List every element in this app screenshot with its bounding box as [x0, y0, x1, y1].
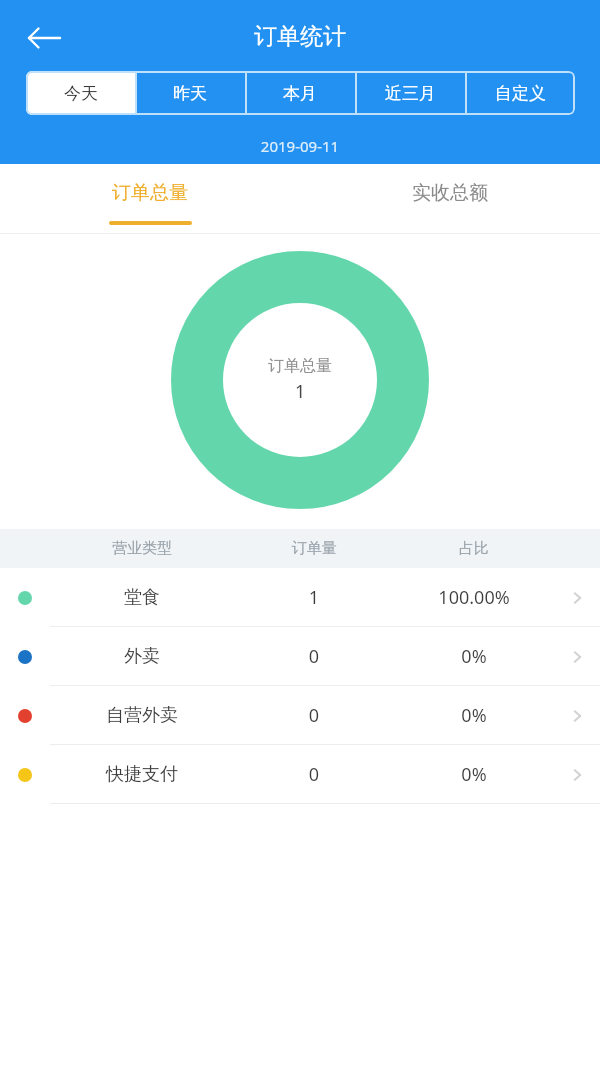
- staticText: 0: [234, 644, 394, 669]
- staticText: 1: [295, 379, 306, 404]
- button[interactable]: 堂食: [0, 568, 600, 627]
- button[interactable]: 昨天: [135, 71, 245, 115]
- button[interactable]: 自营外卖: [0, 686, 600, 745]
- staticText: 2019-09-11: [0, 136, 600, 156]
- staticText: 0%: [394, 644, 554, 669]
- staticText: 本月: [283, 83, 317, 104]
- staticText: 自定义: [495, 83, 546, 104]
- button[interactable]: 订单总量: [0, 164, 300, 234]
- staticText: 昨天: [173, 83, 207, 104]
- staticText: 自营外卖: [50, 704, 234, 727]
- staticText: 0: [234, 703, 394, 728]
- staticText: 订单总量: [268, 356, 332, 376]
- staticText: 实收总额: [412, 181, 488, 205]
- button[interactable]: 近三月: [355, 71, 465, 115]
- staticText: 100.00%: [394, 585, 554, 610]
- staticText: 近三月: [385, 83, 436, 104]
- staticText: 订单统计: [0, 22, 600, 51]
- staticText: 0%: [394, 703, 554, 728]
- staticText: 订单总量: [112, 181, 188, 205]
- button[interactable]: 实收总额: [300, 164, 600, 234]
- button[interactable]: Back: [20, 13, 70, 63]
- staticText: 营业类型: [50, 539, 234, 558]
- staticText: 占比: [394, 539, 554, 558]
- staticText: 1: [234, 585, 394, 610]
- staticText: 0: [234, 762, 394, 787]
- staticText: 订单量: [234, 539, 394, 558]
- staticText: 外卖: [50, 645, 234, 668]
- staticText: 0%: [394, 762, 554, 787]
- button[interactable]: 今天: [26, 71, 135, 115]
- staticText: 快捷支付: [50, 763, 234, 786]
- staticText: 堂食: [50, 586, 234, 609]
- button[interactable]: 自定义: [465, 71, 575, 115]
- staticText: 今天: [64, 83, 98, 104]
- button[interactable]: 快捷支付: [0, 745, 600, 804]
- button[interactable]: 本月: [245, 71, 355, 115]
- button[interactable]: 外卖: [0, 627, 600, 686]
